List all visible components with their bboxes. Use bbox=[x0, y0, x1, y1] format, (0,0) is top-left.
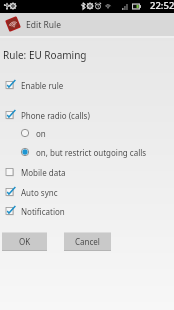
staticText: Mobile data bbox=[21, 167, 66, 178]
staticText: Rule: EU Roaming bbox=[3, 48, 87, 62]
button[interactable]: on bbox=[0, 124, 174, 142]
button[interactable]: on, but restrict outgoing calls bbox=[0, 143, 174, 161]
staticText: Edit Rule bbox=[26, 19, 61, 31]
staticText: OK bbox=[19, 236, 31, 247]
staticText: 22:52 bbox=[150, 0, 174, 12]
button[interactable]: Cancel bbox=[64, 232, 111, 251]
button[interactable]: Auto sync bbox=[0, 183, 174, 201]
staticText: Cancel bbox=[75, 236, 100, 247]
button[interactable]: Phone radio (calls) bbox=[0, 106, 174, 124]
button[interactable]: Mobile data bbox=[0, 163, 174, 181]
button[interactable]: Notification bbox=[0, 202, 174, 220]
staticText: Auto sync bbox=[21, 187, 58, 198]
staticText: Enable rule bbox=[21, 80, 64, 91]
staticText: Phone radio (calls) bbox=[21, 110, 90, 121]
button[interactable]: Enable rule bbox=[0, 76, 174, 94]
staticText: Notification bbox=[21, 206, 65, 217]
button[interactable]: OK bbox=[2, 232, 47, 251]
staticText: on bbox=[36, 128, 46, 139]
staticText: on, but restrict outgoing calls bbox=[36, 147, 147, 158]
